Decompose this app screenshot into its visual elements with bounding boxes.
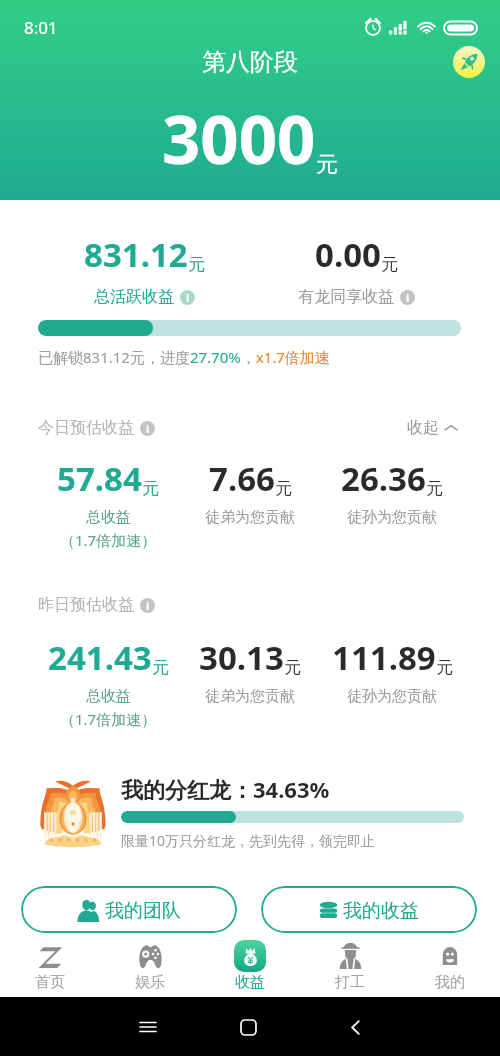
staticText: 831.12 — [84, 232, 188, 277]
staticText: 元 — [142, 478, 159, 499]
staticText: 0.00 — [315, 232, 381, 277]
staticText: （1.7倍加速） — [60, 530, 157, 550]
button[interactable]: Info — [400, 290, 415, 305]
staticText: 总活跃收益 — [94, 287, 174, 307]
staticText: 30.13 — [199, 635, 284, 680]
staticText: 元 — [188, 254, 205, 275]
staticText: 娱乐 — [135, 973, 165, 992]
staticText: 限量10万只分红龙，先到先得，领完即止 — [121, 831, 376, 850]
staticText: （1.7倍加速） — [60, 709, 157, 729]
staticText: 元 — [426, 478, 443, 499]
staticText: 7.66 — [209, 456, 275, 501]
button[interactable]: Info — [140, 421, 155, 436]
button[interactable]: Recents — [128, 1007, 168, 1047]
button[interactable]: 打工 — [300, 937, 400, 997]
staticText: 241.43 — [48, 635, 152, 680]
button[interactable]: Home — [228, 1007, 268, 1047]
button[interactable]: 我的 — [400, 937, 500, 997]
staticText: 有龙同享收益 — [298, 287, 394, 307]
staticText: 元 — [316, 151, 338, 179]
button[interactable]: 首页 — [0, 937, 100, 997]
staticText: i — [146, 421, 150, 436]
staticText: 总收益 — [86, 687, 131, 706]
staticText: 元 — [381, 254, 398, 275]
staticText: i — [406, 290, 410, 305]
button[interactable]: Boost rocket — [453, 46, 485, 78]
staticText: 元 — [275, 478, 292, 499]
button[interactable]: Back — [335, 1007, 375, 1047]
staticText: 元 — [284, 657, 301, 678]
staticText: 8:01 — [24, 16, 58, 39]
staticText: 徒孙为您贡献 — [347, 508, 437, 527]
button[interactable]: 收益 — [200, 937, 300, 997]
button[interactable]: 我的收益 — [261, 886, 477, 933]
staticText: 收起 — [407, 418, 439, 438]
staticText: 徒弟为您贡献 — [205, 508, 295, 527]
staticText: 3000 — [162, 92, 316, 183]
staticText: 总收益 — [86, 508, 131, 527]
button[interactable]: Info — [180, 290, 195, 305]
button[interactable]: 收起 — [407, 418, 457, 438]
staticText: 元 — [436, 657, 453, 678]
staticText: 111.89 — [332, 635, 436, 680]
staticText: 首页 — [35, 973, 65, 992]
staticText: 徒孙为您贡献 — [347, 687, 437, 706]
staticText: 我的团队 — [105, 899, 181, 923]
staticText: i — [186, 290, 190, 305]
staticText: 第八阶段 — [202, 47, 298, 77]
staticText: 徒弟为您贡献 — [205, 687, 295, 706]
staticText: 收益 — [235, 973, 265, 992]
staticText: i — [146, 598, 150, 613]
staticText: 今日预估收益 — [38, 418, 134, 438]
staticText: 我的收益 — [343, 899, 419, 923]
button[interactable]: 娱乐 — [100, 937, 200, 997]
staticText: 我的 — [435, 973, 465, 992]
staticText: 元 — [152, 657, 169, 678]
button[interactable]: Info — [140, 598, 155, 613]
staticText: 打工 — [335, 973, 365, 992]
staticText: 我的分红龙：34.63% — [121, 774, 330, 804]
button[interactable]: 我的团队 — [21, 886, 237, 933]
staticText: 26.36 — [341, 456, 426, 501]
staticText: 已解锁831.12元，进度27.70%，x1.7倍加速 — [38, 347, 330, 367]
staticText: 昨日预估收益 — [38, 595, 134, 615]
staticText: 57.84 — [57, 456, 142, 501]
